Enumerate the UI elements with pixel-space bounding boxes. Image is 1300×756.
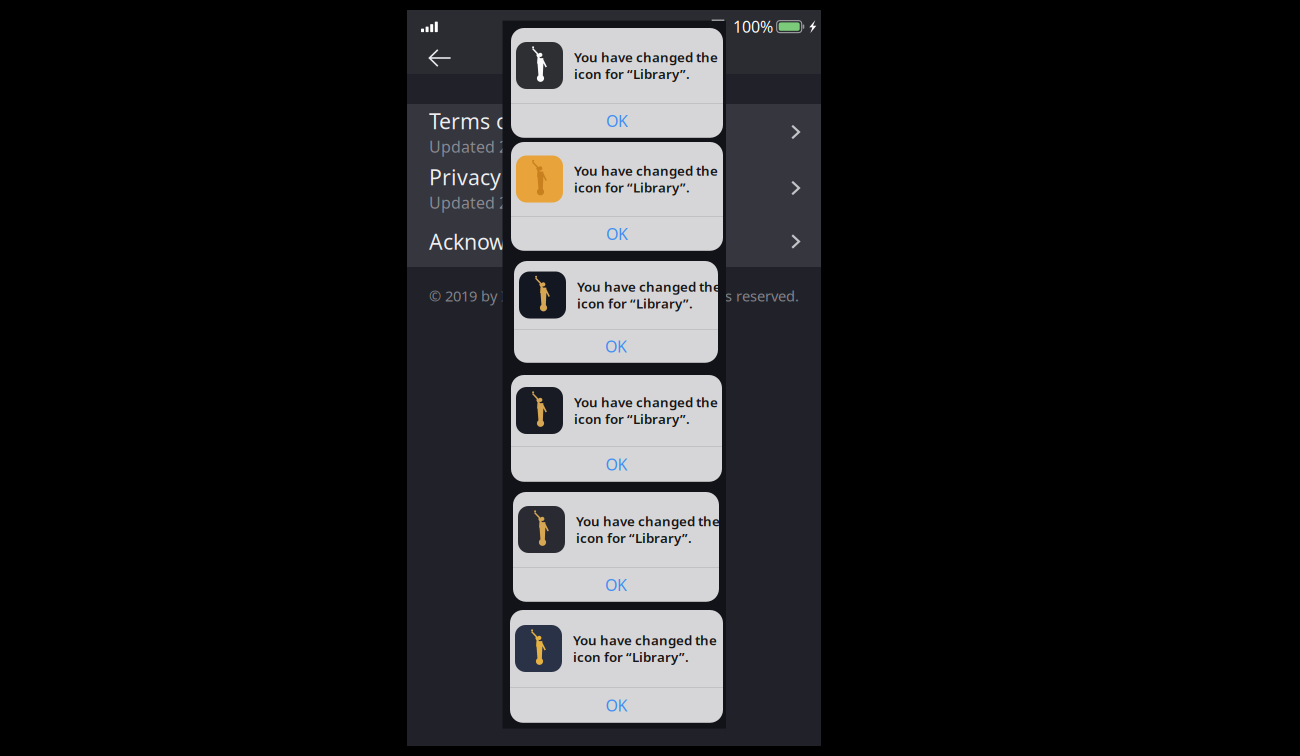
staticText: You have changed the — [576, 512, 720, 530]
staticText: OK — [605, 695, 627, 716]
staticText: OK — [606, 110, 628, 131]
staticText: icon for “Library”. — [573, 648, 689, 666]
staticText: Acknowledgements — [429, 227, 625, 256]
button[interactable]: Back — [417, 38, 463, 78]
staticText: icon for “Library”. — [574, 65, 690, 83]
button[interactable]: OK — [513, 568, 719, 602]
button[interactable]: OK — [511, 104, 723, 138]
staticText: You have changed the — [574, 48, 718, 66]
staticText: OK — [605, 574, 627, 595]
staticText: icon for “Library”. — [574, 178, 690, 196]
button[interactable]: OK — [511, 447, 722, 482]
button[interactable]: OK — [511, 217, 723, 251]
button[interactable]: Privacy Notice — [407, 160, 821, 216]
button[interactable]: OK — [510, 688, 723, 723]
staticText: OK — [605, 454, 627, 475]
staticText: You have changed the — [574, 162, 718, 179]
staticText: Terms of Use — [429, 107, 560, 135]
button[interactable]: Terms of Use — [407, 104, 821, 160]
staticText: OK — [606, 223, 628, 244]
button[interactable]: Acknowledgements — [407, 216, 821, 267]
staticText: Updated 2019 — [429, 192, 535, 213]
staticText: Privacy Notice — [429, 163, 572, 191]
staticText: OK — [605, 336, 627, 357]
staticText: 100% — [733, 16, 773, 37]
staticText: You have changed the — [574, 393, 718, 411]
staticText: You have changed the — [573, 631, 717, 649]
staticText: icon for “Library”. — [574, 410, 690, 428]
staticText: icon for “Library”. — [577, 294, 693, 312]
staticText: You have changed the — [577, 278, 721, 295]
staticText: icon for “Library”. — [576, 529, 692, 547]
button[interactable]: OK — [514, 330, 718, 363]
staticText: © 2019 by Intellectual Reserve, Inc. All… — [429, 286, 799, 305]
staticText: Updated 2019 — [429, 136, 535, 157]
